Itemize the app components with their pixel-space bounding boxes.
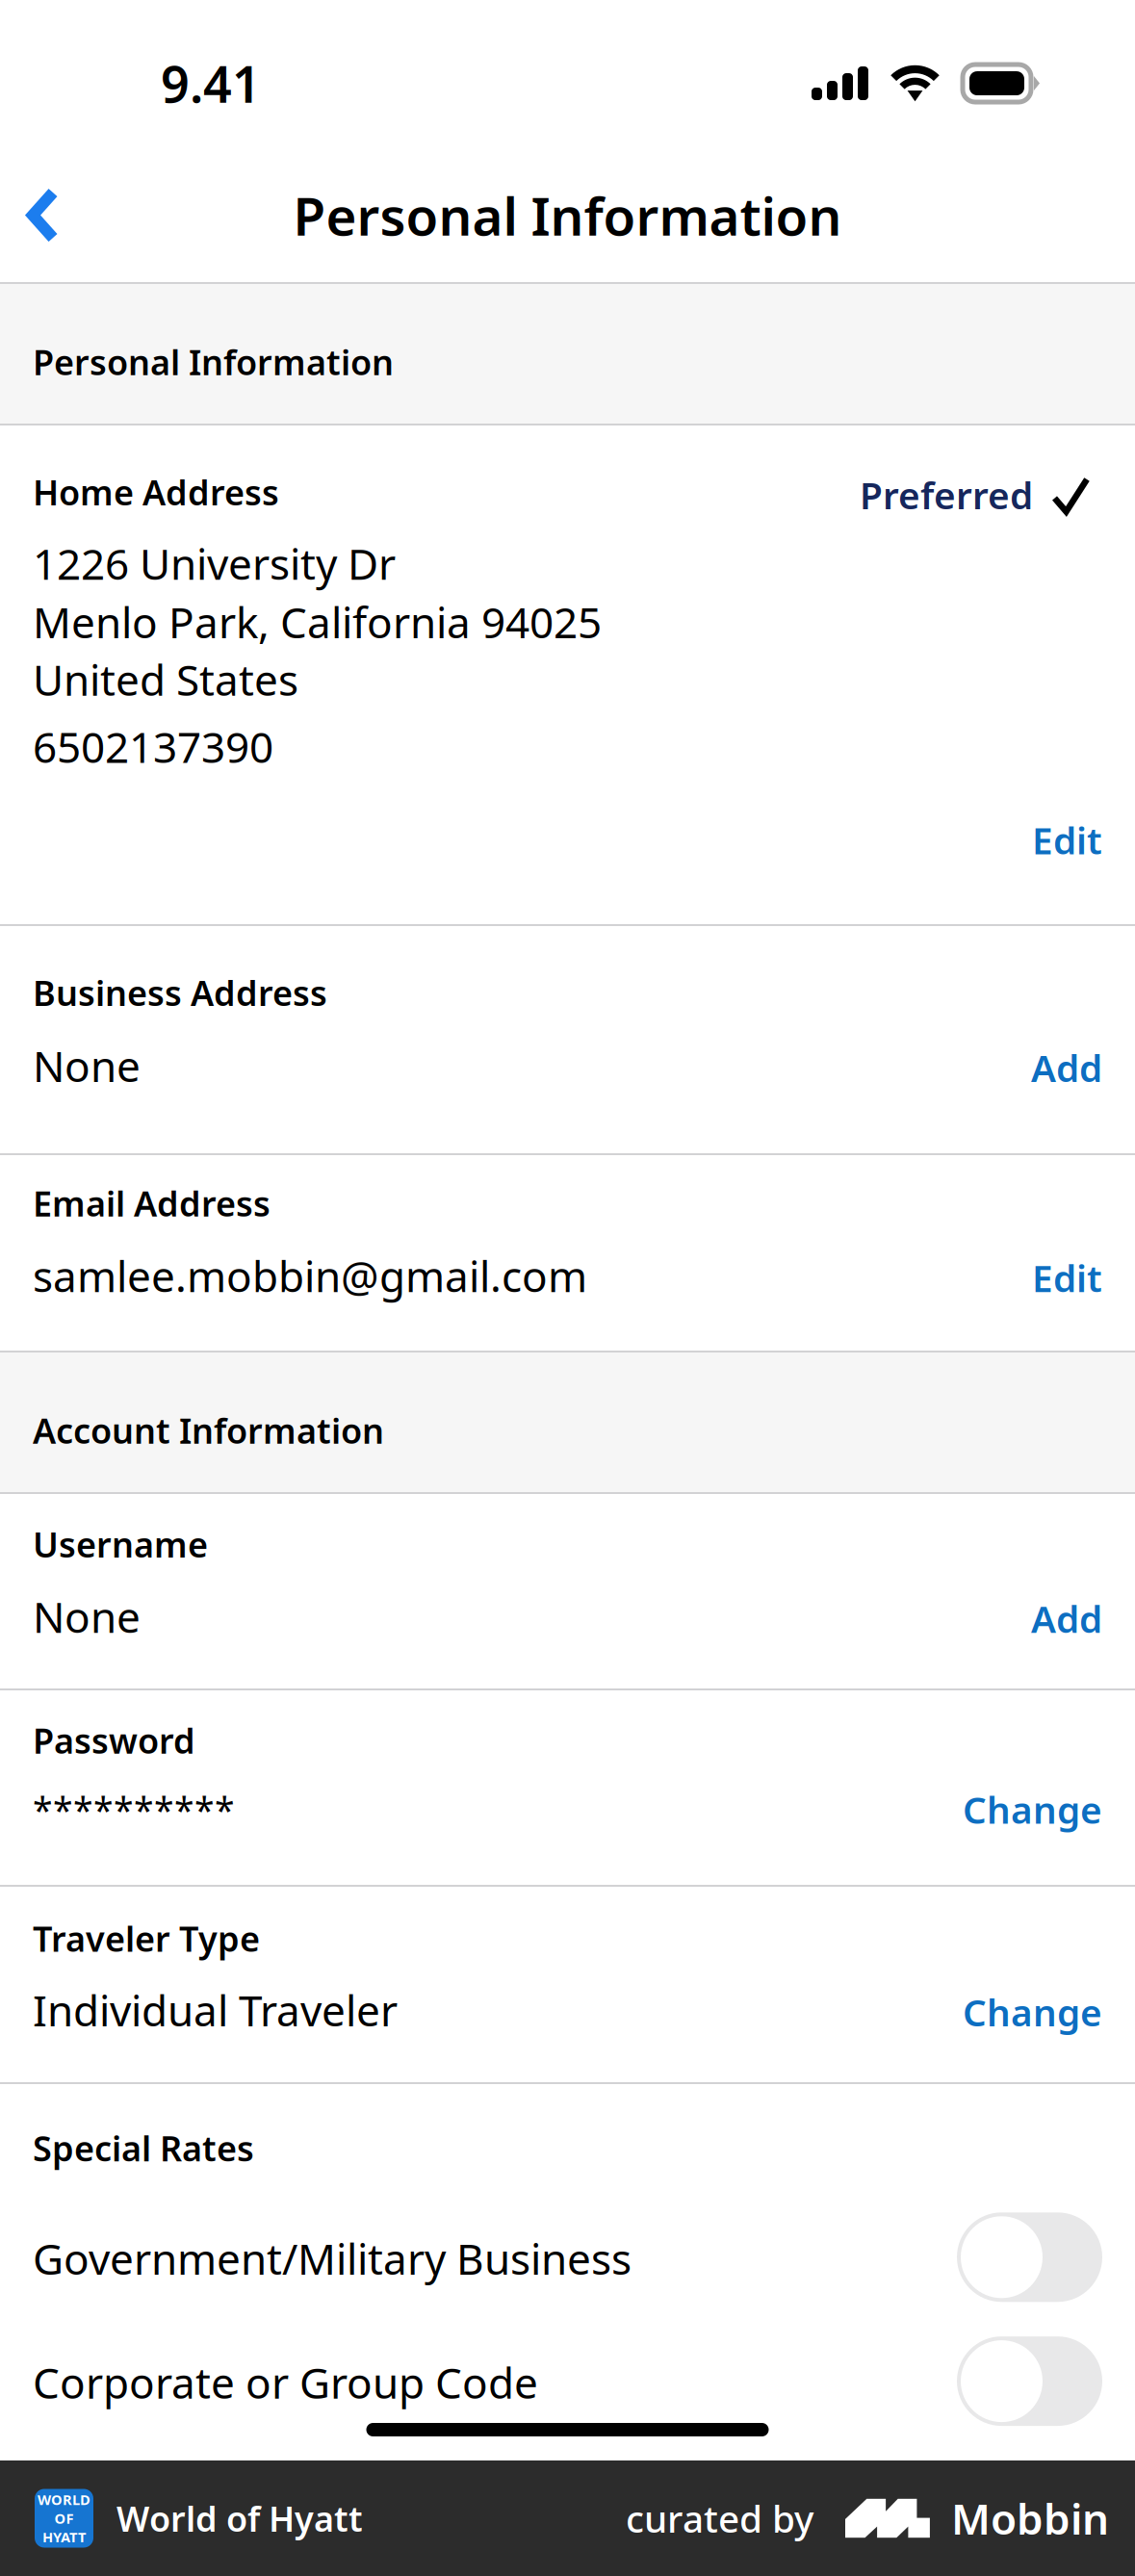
staticText: Traveler Type <box>33 1915 260 1961</box>
staticText: Change <box>963 1785 1102 1834</box>
staticText: Email Address <box>33 1180 271 1226</box>
staticText: Password <box>33 1717 195 1763</box>
staticText: OF <box>54 2509 74 2528</box>
staticText: Personal Information <box>293 180 842 250</box>
button[interactable]: Edit <box>1032 1253 1102 1302</box>
staticText: Add <box>1031 1043 1102 1092</box>
staticText: None <box>33 1038 141 1094</box>
button[interactable]: Change <box>963 1987 1102 2036</box>
staticText: Corporate or Group Code <box>33 2354 538 2410</box>
staticText: Personal Information <box>33 339 394 385</box>
staticText: curated by <box>626 2494 813 2543</box>
staticText: Edit <box>1032 815 1102 864</box>
staticText: Government/Military Business <box>33 2230 632 2286</box>
staticText: Individual Traveler <box>33 1982 398 2038</box>
staticText: 9.41 <box>161 50 261 117</box>
button[interactable]: Edit <box>1032 815 1102 864</box>
staticText: Mobbin <box>951 2490 1109 2546</box>
staticText: Special Rates <box>33 2125 254 2171</box>
staticText: Change <box>963 1987 1102 2036</box>
staticText: World of Hyatt <box>116 2495 363 2541</box>
button[interactable]: Change <box>963 1785 1102 1834</box>
button[interactable]: Toggle <box>957 2212 1102 2302</box>
staticText: HYATT <box>42 2528 86 2546</box>
button[interactable]: Add <box>1031 1043 1102 1092</box>
button[interactable]: Toggle <box>957 2336 1102 2426</box>
staticText: Edit <box>1032 1253 1102 1302</box>
staticText: None <box>33 1588 141 1645</box>
staticText: Add <box>1031 1594 1102 1643</box>
staticText: Username <box>33 1521 208 1567</box>
staticText: 6502137390 <box>33 718 273 775</box>
staticText: 1226 University Dr <box>33 535 396 591</box>
staticText: Preferred <box>860 470 1033 519</box>
staticText: samlee.mobbin@gmail.com <box>33 1248 587 1304</box>
staticText: Menlo Park, California 94025 <box>33 594 602 650</box>
staticText: Business Address <box>33 969 327 1015</box>
staticText: WORLD <box>38 2490 90 2509</box>
staticText: Account Information <box>33 1407 384 1453</box>
button[interactable]: Add <box>1031 1594 1102 1643</box>
staticText: Home Address <box>33 469 279 515</box>
staticText: United States <box>33 651 298 707</box>
button[interactable]: Back <box>0 162 91 269</box>
staticText: ********** <box>33 1786 235 1834</box>
